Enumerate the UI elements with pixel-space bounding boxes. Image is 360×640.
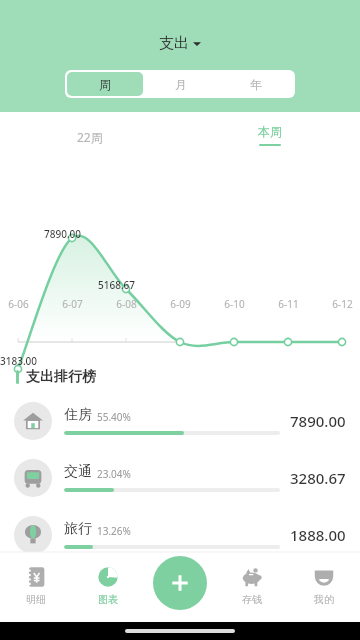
button[interactable]: 存钱 (216, 552, 288, 622)
staticText: 6-09 (170, 297, 191, 311)
button[interactable]: 我的 (288, 552, 360, 622)
button[interactable]: 住房 (0, 392, 360, 449)
staticText: 存钱 (242, 593, 262, 606)
staticText: 6-12 (332, 297, 353, 311)
button[interactable]: 本周 (240, 124, 300, 146)
button[interactable]: 支出 (153, 32, 207, 55)
staticText: 旅行 (64, 520, 92, 538)
staticText: 3183.00 (0, 354, 38, 368)
staticText: 我的 (314, 593, 334, 606)
staticText: 明细 (26, 593, 46, 606)
staticText: 13.26% (97, 524, 131, 538)
staticText: 5168.67 (98, 278, 136, 292)
staticText: 6-08 (116, 297, 137, 311)
button[interactable]: 月 (143, 72, 218, 96)
staticText: 支出 (159, 34, 189, 53)
button[interactable]: Add record (153, 556, 207, 610)
staticText: 图表 (98, 593, 118, 606)
staticText: 6-06 (8, 297, 29, 311)
staticText: 23.04% (97, 467, 131, 481)
staticText: 本周 (258, 124, 282, 139)
staticText: 6-10 (224, 297, 245, 311)
staticText: 月 (175, 77, 187, 92)
button[interactable]: 交通 (0, 449, 360, 506)
staticText: 年 (250, 77, 262, 92)
button[interactable]: 旅行 (0, 506, 360, 563)
staticText: 6-11 (278, 297, 299, 311)
staticText: 7890.00 (290, 411, 346, 431)
button[interactable]: 明细 (0, 552, 72, 622)
staticText: 6-07 (62, 297, 83, 311)
staticText: 1888.00 (290, 525, 346, 545)
button[interactable]: 周 (67, 72, 143, 96)
staticText: 55.40% (97, 410, 131, 424)
staticText: 周 (99, 77, 111, 92)
staticText: 7890.00 (44, 227, 82, 241)
button[interactable]: 22周 (60, 124, 120, 150)
staticText: 22周 (77, 129, 103, 145)
button[interactable]: 图表 (72, 552, 144, 622)
staticText: 住房 (64, 406, 92, 424)
staticText: 支出排行榜 (26, 368, 96, 386)
staticText: 3280.67 (290, 468, 346, 488)
button[interactable]: 年 (218, 72, 293, 96)
staticText: 交通 (64, 463, 92, 481)
